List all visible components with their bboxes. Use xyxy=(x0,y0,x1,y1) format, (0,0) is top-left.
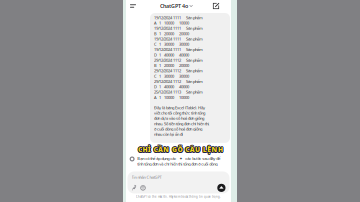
staticText: CHỈ CẦN GÕ CÂU LỆNH xyxy=(138,146,223,155)
staticText: ChatGPT 4o xyxy=(160,2,188,10)
staticText: CHỈ CẦN GÕ CÂU LỆNH xyxy=(137,146,222,155)
staticText: A 1 10000 10000 xyxy=(154,20,189,26)
staticText: CHỈ CẦN GÕ CÂU LỆNH xyxy=(139,145,224,154)
staticText: D 1 40000 40000 xyxy=(154,84,189,89)
staticText: 25/12/2024 1113 Sản phẩm xyxy=(154,89,203,95)
staticText: B 1 20000 20000 xyxy=(154,31,189,36)
staticText: 19/12/2024 1111 Sản phẩm xyxy=(154,26,203,31)
staticText: Tin nhắn ChatGPT xyxy=(131,174,161,180)
staticText: CHỈ CẦN GÕ CÂU LỆNH xyxy=(139,146,224,155)
staticText: 19/12/2024 1111 Sản phẩm xyxy=(154,47,203,52)
staticText: CHỈ CẦN GÕ CÂU LỆNH xyxy=(138,144,223,153)
button[interactable]: Tools xyxy=(140,185,145,191)
button[interactable]: Menu xyxy=(130,1,144,11)
staticText: C 1 30000 30000 xyxy=(154,42,189,47)
staticText: CHỈ CẦN GÕ CÂU LỆNH xyxy=(139,144,224,153)
button[interactable]: ChatGPT 4o xyxy=(160,2,193,10)
staticText: A 1 10000 10000 xyxy=(154,95,189,100)
staticText: Đây là bảng Excel (Table). Hãy viết cho … xyxy=(154,105,209,137)
staticText: Bạn có thể áp dụng các ✦ các bước sau đâ… xyxy=(137,156,220,166)
staticText: CHỈ CẦN GÕ CÂU LỆNH xyxy=(137,144,222,153)
staticText: D 1 40000 40000 xyxy=(154,52,189,57)
staticText: 19/12/2024 1111 Sản phẩm xyxy=(154,15,203,20)
staticText: 29/12/2024 1112 Sản phẩm xyxy=(154,79,203,84)
staticText: 29/12/2024 1112 Sản phẩm xyxy=(154,57,203,63)
staticText: CHỈ CẦN GÕ CÂU LỆNH xyxy=(138,145,223,154)
staticText: C 1 30000 30000 xyxy=(154,73,189,79)
staticText: ChatGPT có thể mắc lỗi. Hãy kiểm tra các… xyxy=(136,195,221,198)
staticText: CHỈ CẦN GÕ CÂU LỆNH xyxy=(137,145,222,154)
button[interactable]: Send xyxy=(217,184,225,192)
staticText: B 1 20000 20000 xyxy=(154,63,189,68)
staticText: 29/12/2024 1112 Sản phẩm xyxy=(154,68,203,73)
button[interactable]: Attach file xyxy=(131,185,136,191)
staticText: 19/12/2024 1111 Sản phẩm xyxy=(154,36,203,41)
button[interactable]: New chat xyxy=(211,1,221,11)
